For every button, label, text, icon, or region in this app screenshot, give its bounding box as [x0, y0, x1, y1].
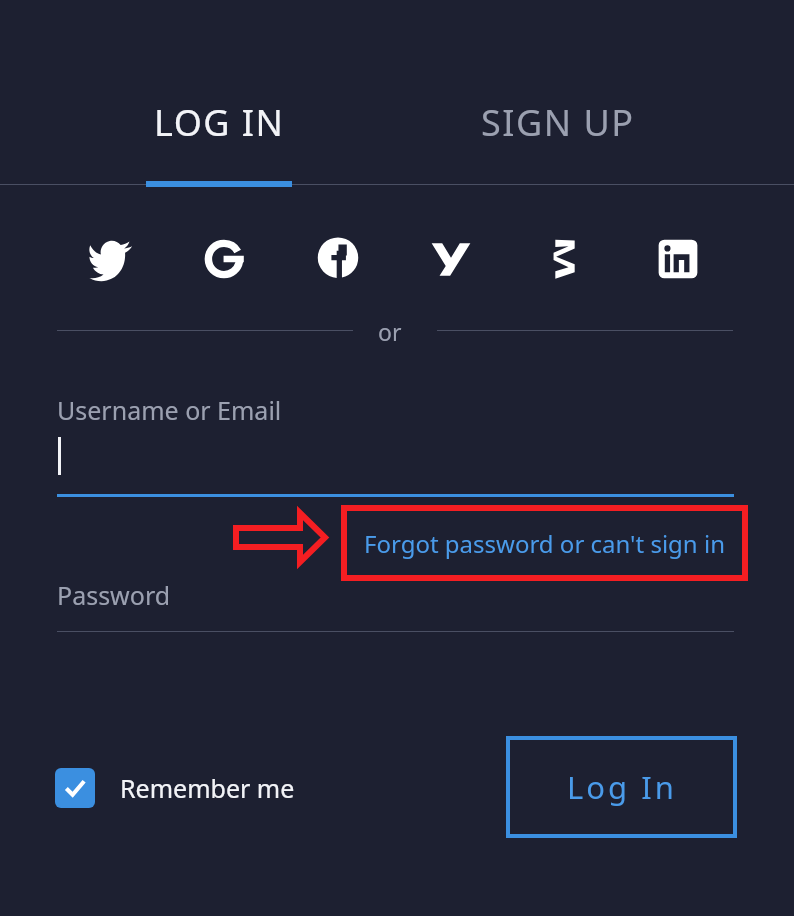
- staticText: Password: [57, 578, 171, 612]
- button[interactable]: Username or Email: [57, 385, 734, 498]
- button[interactable]: LOG IN: [62, 84, 377, 182]
- staticText: LOG IN: [154, 98, 285, 147]
- button[interactable]: Sign in with Google: [194, 229, 254, 289]
- button[interactable]: Sign in with Facebook: [308, 229, 368, 289]
- button[interactable]: Remember me: [50, 762, 295, 814]
- button[interactable]: Sign in with Yahoo: [421, 229, 481, 289]
- staticText: Forgot password or can't sign in: [364, 527, 725, 560]
- staticText: Log In: [567, 766, 677, 808]
- button[interactable]: Password: [57, 572, 734, 634]
- button[interactable]: Sign in with LinkedIn: [648, 229, 708, 289]
- button[interactable]: SIGN UP: [400, 84, 715, 182]
- button[interactable]: Forgot password or can't sign in: [348, 512, 741, 574]
- staticText: Username or Email: [57, 393, 282, 427]
- button[interactable]: Log In: [508, 738, 735, 836]
- staticText: or: [378, 316, 402, 347]
- staticText: SIGN UP: [481, 98, 635, 147]
- button[interactable]: Sign in with Stack Exchange: [535, 229, 595, 289]
- staticText: Remember me: [120, 771, 295, 805]
- button[interactable]: Sign in with Twitter: [81, 229, 141, 289]
